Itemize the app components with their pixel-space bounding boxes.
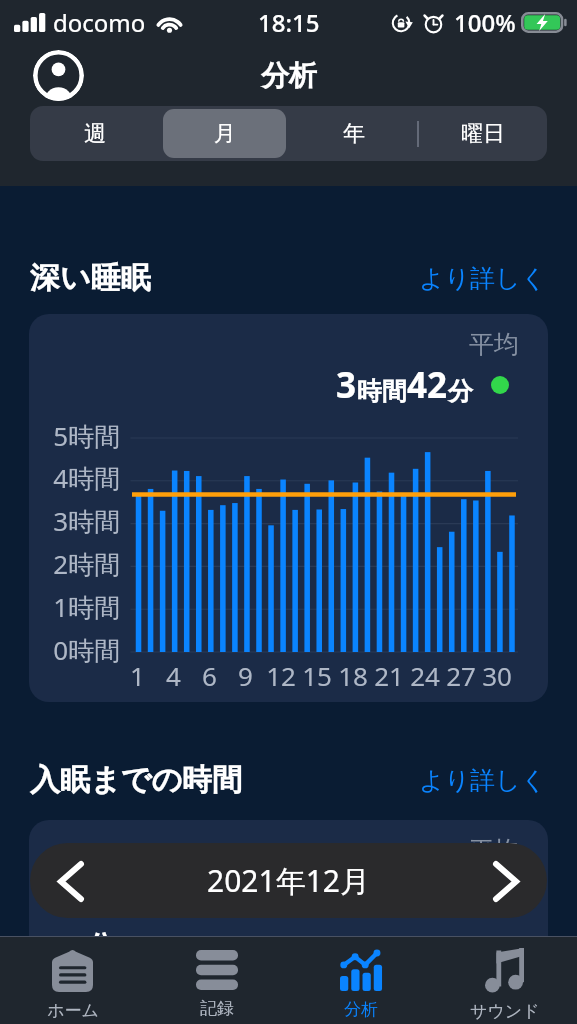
staticText: 30 [482,658,512,693]
staticText: 3 [336,361,357,409]
staticText: ホーム [47,1000,99,1021]
staticText: 年 [343,120,365,148]
staticText: 18:15 [258,6,320,39]
staticText: 記録 [200,998,234,1019]
staticText: 4 [166,658,181,693]
staticText: 週 [84,120,106,148]
staticText: 1 [130,658,145,693]
staticText: 曜日 [461,120,505,148]
staticText: 分析 [261,58,317,93]
staticText: 2時間 [53,546,120,582]
staticText: 18 [338,658,368,693]
staticText: 3時間 [53,503,120,539]
staticText: docomo [53,6,146,39]
staticText: 平均 [469,835,519,866]
staticText: より詳しく [419,263,547,294]
button[interactable]: 月 [163,109,286,158]
button[interactable]: 年 [292,109,415,158]
staticText: 100% [454,6,516,39]
button[interactable]: 分析 [289,937,433,1024]
staticText: 分 [448,376,473,407]
staticText: 12 [266,658,296,693]
staticText: 15 [302,658,332,693]
button[interactable]: 週 [33,109,157,158]
staticText: 9 [238,658,253,693]
staticText: 平均 [469,329,519,360]
staticText: 27 [446,658,476,693]
staticText: 時間 [357,376,407,407]
button[interactable]: 0時間 [29,314,548,702]
staticText: 2021年12月 [207,860,370,901]
staticText: 分析 [344,999,378,1020]
button[interactable]: より詳しく [419,765,547,796]
staticText: 30分 [53,926,116,966]
button[interactable]: ホーム [0,937,145,1024]
staticText: 1時間 [53,589,120,625]
button[interactable]: サウンド [433,937,577,1024]
staticText: 42 [407,361,448,409]
staticText: 24 [410,658,440,693]
staticText: より詳しく [419,765,547,796]
button[interactable]: 記録 [145,937,289,1024]
button[interactable]: より詳しく [419,263,547,294]
staticText: 入眠までの時間 [30,761,243,799]
staticText: 5時間 [53,418,120,454]
staticText: 0時間 [53,632,120,668]
staticText: 6 [202,658,217,693]
button[interactable]: Next month [477,852,535,910]
button[interactable]: Profile [33,50,84,101]
staticText: 深い睡眠 [30,259,151,297]
button[interactable]: 曜日 [421,109,544,158]
staticText: 月 [214,120,236,148]
staticText: 21 [374,658,404,693]
staticText: 4時間 [53,460,120,496]
button[interactable]: Previous month [42,852,100,910]
staticText: サウンド [470,1001,540,1022]
